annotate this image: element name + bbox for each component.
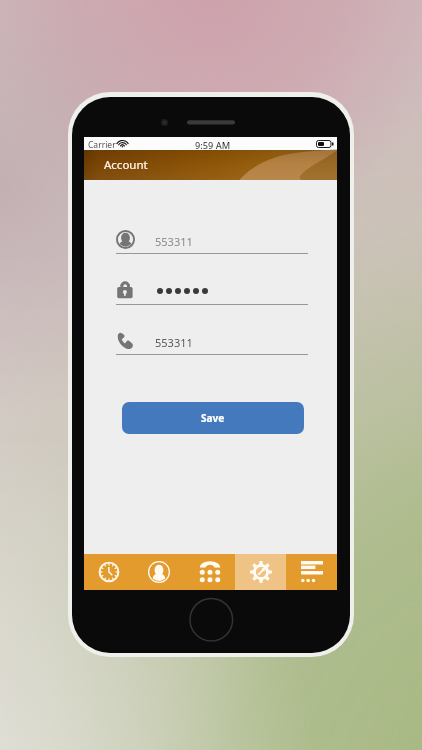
staticText: Carrier [88,139,116,151]
staticText: Account [104,157,148,173]
button[interactable]: 553311 [116,230,308,256]
button[interactable]: Contacts [134,554,184,590]
staticText: Save [201,411,225,425]
staticText: 9:59 AM [195,139,231,152]
button[interactable]: Keypad [184,554,235,590]
button[interactable]: Save [122,402,304,434]
button[interactable]: 553311 [116,331,308,357]
staticText: 553311 [155,335,193,350]
button[interactable]: More [286,554,337,590]
button[interactable]: Settings [235,554,286,590]
button[interactable]: Recents [84,554,134,590]
staticText: 553311 [155,234,193,249]
button[interactable] [116,281,308,307]
